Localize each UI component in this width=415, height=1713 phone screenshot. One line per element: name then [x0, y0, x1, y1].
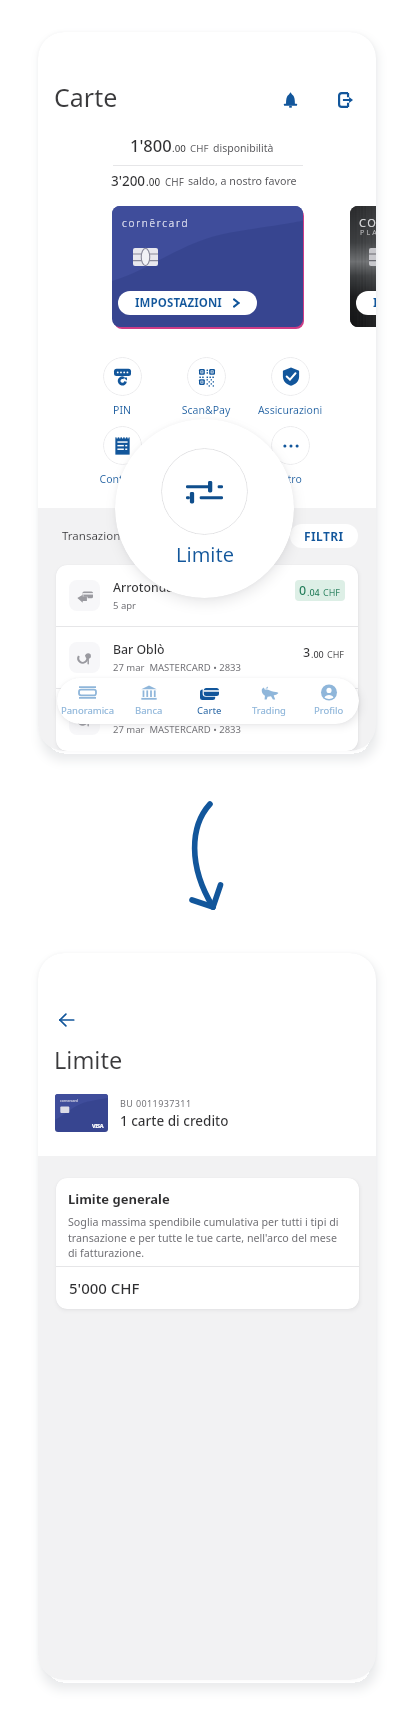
- staticText: Conteggi: [86, 472, 158, 486]
- staticText: .00: [146, 175, 161, 189]
- button[interactable]: Carte: [54, 80, 118, 114]
- staticText: CORNÈRCARD: [359, 215, 376, 230]
- staticText: IMPOSTAZIONI: [135, 295, 222, 311]
- staticText: Limite: [176, 541, 234, 568]
- staticText: .04: [307, 586, 320, 598]
- staticText: 3: [303, 644, 311, 661]
- staticText: 5 apr: [113, 599, 136, 612]
- button[interactable]: Limite: [161, 448, 248, 535]
- staticText: Bar Oblò: [113, 641, 165, 658]
- button[interactable]: CORNÈRCARD: [350, 206, 376, 327]
- staticText: CHF: [190, 142, 209, 155]
- staticText: CHF: [165, 175, 184, 189]
- staticText: Scan&Pay: [170, 403, 242, 417]
- staticText: saldo, a nostro favore: [188, 174, 297, 189]
- button[interactable]: Scan&Pay: [170, 357, 242, 417]
- staticText: Carte: [197, 704, 222, 717]
- staticText: 0: [299, 582, 307, 599]
- staticText: Arrotondamento: [113, 579, 212, 596]
- staticText: Trading: [252, 704, 286, 717]
- staticText: 5'000 CHF: [69, 1278, 140, 1298]
- button[interactable]: PIN: [86, 357, 158, 417]
- button[interactable]: IMPOSTAZIONI: [118, 291, 257, 315]
- button[interactable]: Indietro: [50, 1004, 82, 1036]
- button[interactable]: Limite: [54, 1044, 123, 1076]
- staticText: Banca: [135, 704, 163, 717]
- staticText: IMPOSTAZIONI: [373, 295, 376, 311]
- staticText: disponibilità: [213, 141, 274, 155]
- button[interactable]: Conteggi: [86, 426, 158, 486]
- staticText: .50: [311, 710, 324, 722]
- button[interactable]: FILTRI: [290, 524, 358, 548]
- button[interactable]: Profilo: [299, 678, 359, 724]
- button[interactable]: Banca: [118, 678, 179, 724]
- staticText: PLATINUM: [360, 228, 376, 238]
- staticText: cornērcard: [122, 216, 190, 230]
- staticText: Pagamento: [170, 472, 242, 486]
- staticText: 1'800: [130, 134, 172, 156]
- staticText: CHF: [323, 586, 341, 598]
- staticText: Profilo: [314, 704, 344, 717]
- staticText: cornercard: [60, 1098, 78, 1103]
- staticText: Assicurazioni: [254, 403, 326, 417]
- button[interactable]: IMPOSTAZIONI: [356, 291, 376, 315]
- button[interactable]: Esci: [329, 84, 361, 116]
- staticText: FILTRI: [304, 528, 344, 544]
- button[interactable]: Assicurazioni: [254, 357, 326, 417]
- staticText: Panoramica: [61, 704, 114, 717]
- button[interactable]: Trading: [239, 678, 299, 724]
- staticText: Limite generale: [68, 1190, 170, 1208]
- button[interactable]: Altro: [254, 426, 326, 486]
- button[interactable]: cornercard: [55, 1094, 335, 1132]
- staticText: Soglia massima spendibile cumulativa per…: [68, 1215, 346, 1260]
- staticText: CHF: [327, 648, 345, 660]
- staticText: .00: [172, 142, 186, 155]
- button[interactable]: Bar Oblò: [56, 627, 358, 688]
- button[interactable]: Transazioni: [62, 528, 124, 544]
- staticText: Bar Oblò: [113, 703, 165, 720]
- staticText: CHF: [327, 710, 345, 722]
- staticText: 27 mar MASTERCARD • 2833: [113, 723, 241, 736]
- staticText: Limite: [54, 1044, 123, 1076]
- staticText: 3'200: [111, 172, 146, 190]
- staticText: Altro: [254, 472, 326, 486]
- staticText: .00: [311, 648, 324, 660]
- button[interactable]: Notifiche: [274, 84, 306, 116]
- button[interactable]: cornērcard: [112, 206, 303, 327]
- staticText: VISA: [92, 1122, 104, 1129]
- button[interactable]: Arrotondamento: [56, 565, 358, 626]
- staticText: Carte: [54, 80, 118, 114]
- button[interactable]: 5'000 CHF: [56, 1267, 359, 1309]
- staticText: Transazioni: [62, 528, 124, 544]
- staticText: PIN: [86, 403, 158, 417]
- button[interactable]: Pagamento: [170, 426, 242, 486]
- staticText: BU 0011937311: [120, 1097, 192, 1109]
- staticText: 27 mar MASTERCARD • 2833: [113, 661, 241, 674]
- button[interactable]: Panoramica: [57, 678, 118, 724]
- button[interactable]: Bar Oblò: [56, 689, 358, 750]
- button[interactable]: Carte: [179, 678, 239, 724]
- staticText: 1 carte di credito: [120, 1112, 229, 1130]
